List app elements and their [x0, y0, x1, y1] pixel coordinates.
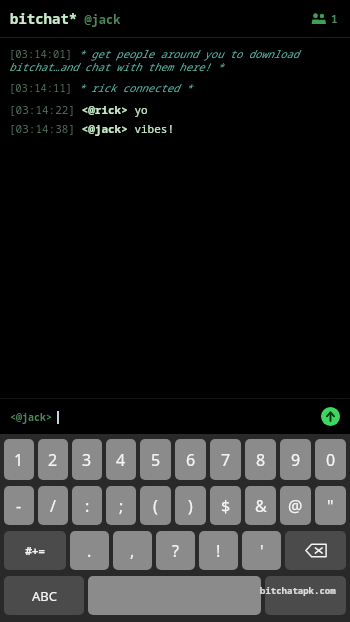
- staticText: 0: [326, 449, 336, 471]
- staticText: #+=: [25, 543, 45, 558]
- button[interactable]: 0: [315, 439, 346, 480]
- button[interactable]: ): [175, 486, 206, 525]
- button[interactable]: ,: [113, 531, 152, 570]
- staticText: 2: [48, 449, 58, 471]
- button[interactable]: 4: [106, 439, 136, 480]
- staticText: ': [260, 540, 264, 562]
- button[interactable]: Space: [88, 576, 261, 615]
- button[interactable]: .: [70, 531, 109, 570]
- staticText: [03:14:11] * rick connected *: [9, 81, 341, 95]
- button[interactable]: 2: [38, 439, 68, 480]
- staticText: :: [85, 495, 90, 517]
- button[interactable]: <@jack>: [10, 410, 321, 424]
- button[interactable]: /: [38, 486, 68, 525]
- staticText: [03:14:22] <@rick> yo: [9, 102, 341, 117]
- button[interactable]: #+=: [4, 531, 66, 570]
- staticText: (: [153, 495, 158, 517]
- staticText: ): [188, 495, 193, 517]
- staticText: &: [255, 495, 267, 517]
- staticText: $: [221, 495, 231, 517]
- staticText: 1: [14, 449, 24, 471]
- staticText: <@jack>: [10, 410, 52, 424]
- button[interactable]: ': [242, 531, 281, 570]
- staticText: ,: [130, 540, 135, 562]
- button[interactable]: &: [245, 486, 276, 525]
- button[interactable]: ?: [156, 531, 195, 570]
- staticText: 4: [116, 449, 126, 471]
- staticText: ;: [119, 495, 124, 517]
- button[interactable]: 3: [72, 439, 102, 480]
- button[interactable]: !: [199, 531, 238, 570]
- button[interactable]: Enter: [265, 576, 346, 615]
- button[interactable]: ;: [106, 486, 136, 525]
- button[interactable]: ABC: [4, 576, 84, 615]
- staticText: @: [288, 495, 303, 517]
- button[interactable]: People online: 1: [307, 5, 342, 32]
- staticText: 7: [221, 449, 231, 471]
- button[interactable]: (: [140, 486, 171, 525]
- button[interactable]: Send: [321, 407, 340, 426]
- staticText: bitchatapk.com: [260, 584, 336, 596]
- staticText: ?: [172, 540, 179, 562]
- button[interactable]: ": [315, 486, 346, 525]
- staticText: ABC: [32, 587, 57, 605]
- staticText: 8: [256, 449, 266, 471]
- staticText: 1: [331, 11, 338, 26]
- button[interactable]: 9: [280, 439, 311, 480]
- button[interactable]: 8: [245, 439, 276, 480]
- staticText: -: [16, 495, 22, 517]
- staticText: 9: [291, 449, 301, 471]
- staticText: 3: [82, 449, 92, 471]
- staticText: !: [216, 540, 221, 562]
- button[interactable]: 5: [140, 439, 171, 480]
- staticText: 6: [186, 449, 196, 471]
- button[interactable]: 1: [4, 439, 34, 480]
- staticText: ": [327, 495, 334, 517]
- staticText: [03:14:38] <@jack> vibes!: [9, 121, 341, 136]
- staticText: 5: [151, 449, 161, 471]
- staticText: /: [50, 495, 56, 517]
- staticText: bitchat* @jack: [10, 9, 121, 28]
- button[interactable]: Backspace: [285, 531, 346, 570]
- button[interactable]: 7: [210, 439, 241, 480]
- button[interactable]: @: [280, 486, 311, 525]
- button[interactable]: -: [4, 486, 34, 525]
- button[interactable]: 6: [175, 439, 206, 480]
- button[interactable]: :: [72, 486, 102, 525]
- staticText: [03:14:01] * get people around you to do…: [9, 47, 341, 74]
- button[interactable]: $: [210, 486, 241, 525]
- staticText: .: [87, 540, 92, 562]
